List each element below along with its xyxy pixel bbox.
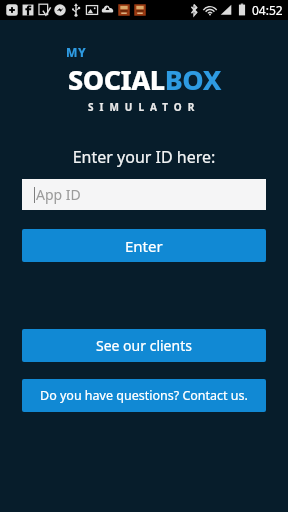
staticText: Enter your ID here: <box>0 146 288 168</box>
staticText: SIMULATOR <box>88 100 201 114</box>
staticText: App ID <box>36 185 81 204</box>
staticText: Do you have questions? Contact us. <box>40 387 248 404</box>
staticText: Enter <box>125 236 163 256</box>
button[interactable]: See our clients <box>22 329 266 362</box>
button[interactable]: Enter <box>22 229 266 262</box>
staticText: 04:52 <box>252 2 283 18</box>
button[interactable]: Do you have questions? Contact us. <box>22 379 266 412</box>
button[interactable]: App ID <box>22 179 266 210</box>
staticText: SOCIALBOX <box>68 61 221 98</box>
staticText: MY <box>66 44 87 60</box>
staticText: See our clients <box>96 336 192 355</box>
